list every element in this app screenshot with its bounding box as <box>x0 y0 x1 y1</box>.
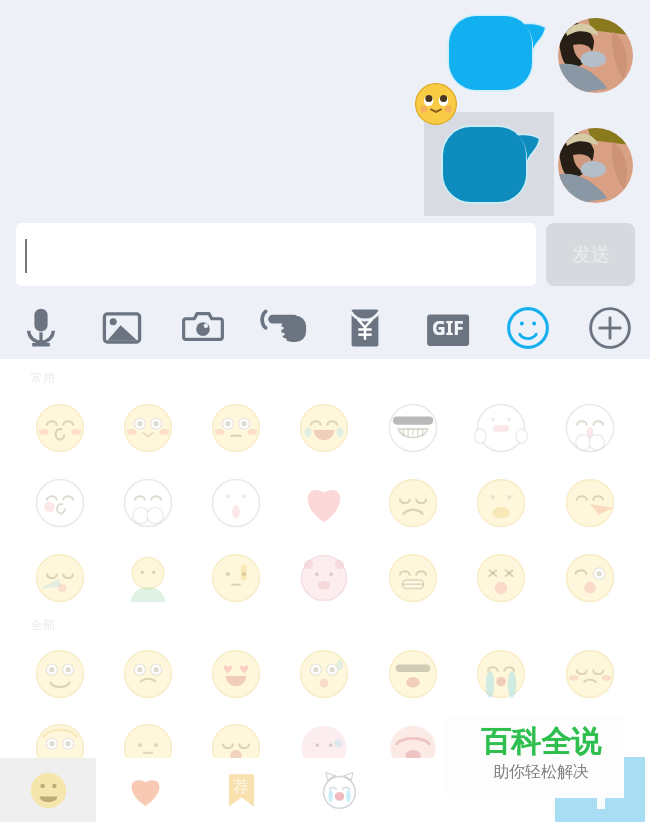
button[interactable]: Voice <box>11 298 71 358</box>
staticText: 发送 <box>572 243 610 267</box>
button[interactable]: Emoji <box>212 650 260 698</box>
staticText: 全部 <box>31 617 55 632</box>
button[interactable]: Emoji <box>477 650 525 698</box>
button[interactable]: Emoji <box>389 404 437 452</box>
button[interactable]: Emoji tab <box>193 758 289 822</box>
staticText: 荐 <box>233 777 249 797</box>
button[interactable]: Emoji <box>566 479 614 527</box>
button[interactable]: Emoji <box>124 404 172 452</box>
button[interactable]: Emoji <box>212 554 260 602</box>
button[interactable]: Emoji <box>36 404 84 452</box>
button[interactable]: Emoji <box>389 724 437 772</box>
button[interactable]: Emoji tab <box>291 758 387 822</box>
button[interactable]: Emoji <box>124 554 172 602</box>
button[interactable]: Emoji <box>300 479 348 527</box>
button[interactable]: Emoji <box>36 724 84 772</box>
button[interactable]: Camera <box>173 298 233 358</box>
button[interactable]: Emoji <box>300 554 348 602</box>
button[interactable]: Sticker <box>415 83 457 125</box>
staticText: GIF <box>432 315 464 341</box>
button[interactable]: Emoji <box>389 650 437 698</box>
button[interactable]: Emoji <box>477 724 525 772</box>
button[interactable]: Emoji <box>566 404 614 452</box>
button[interactable]: Emoji <box>477 404 525 452</box>
staticText: 百科全说 <box>481 723 601 761</box>
button[interactable]: Message bubble <box>449 16 545 90</box>
button[interactable]: Emoji <box>36 554 84 602</box>
button[interactable]: Emoji tab <box>97 758 193 822</box>
button[interactable]: Emoji <box>300 650 348 698</box>
button[interactable]: Emoji <box>566 724 614 772</box>
button[interactable] <box>16 223 536 286</box>
button[interactable]: Emoji <box>36 479 84 527</box>
button[interactable]: Emoji <box>212 479 260 527</box>
button[interactable]: Emoji <box>566 650 614 698</box>
button[interactable]: Photos <box>92 298 152 358</box>
button[interactable]: GIF <box>418 298 478 358</box>
button[interactable]: Emoji <box>212 404 260 452</box>
button[interactable]: Emoji <box>36 650 84 698</box>
button[interactable]: Emoji <box>300 724 348 772</box>
button[interactable]: Voice to text <box>255 298 315 358</box>
button[interactable]: Emoji <box>389 479 437 527</box>
button[interactable]: Emoji <box>124 724 172 772</box>
staticText: 常用 <box>31 370 55 385</box>
button[interactable]: Avatar <box>558 128 633 203</box>
button[interactable]: Emoji <box>477 479 525 527</box>
staticText: 助你轻松解决 <box>493 762 589 782</box>
button[interactable]: Emoji <box>566 554 614 602</box>
button[interactable]: Red packet <box>335 298 395 358</box>
button[interactable]: Emoji <box>124 479 172 527</box>
button[interactable]: 发送 <box>546 223 635 286</box>
button[interactable]: Message bubble selected <box>443 127 539 202</box>
button[interactable]: Emoji <box>389 554 437 602</box>
button[interactable]: Emoji <box>212 724 260 772</box>
button[interactable]: Emoji <box>498 298 558 358</box>
button[interactable]: Avatar <box>558 18 633 93</box>
button[interactable]: More <box>580 298 640 358</box>
button[interactable]: Emoji <box>124 650 172 698</box>
button[interactable]: Emoji <box>300 404 348 452</box>
button[interactable]: Emoji tab <box>0 758 96 822</box>
button[interactable]: Emoji <box>477 554 525 602</box>
